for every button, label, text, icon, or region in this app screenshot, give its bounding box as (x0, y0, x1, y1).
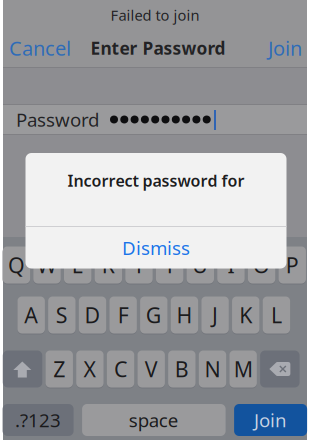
staticText: Q (8, 251, 25, 279)
button[interactable]: G (140, 296, 167, 334)
button[interactable]: K (232, 296, 259, 334)
staticText: H (176, 301, 192, 329)
staticText: L (271, 301, 282, 329)
button[interactable]: W (33, 246, 61, 284)
button[interactable]: .?123 (3, 404, 74, 436)
staticText: G (146, 301, 162, 329)
button[interactable]: Dismiss (25, 227, 286, 268)
staticText: B (175, 355, 189, 383)
staticText: R (102, 251, 115, 279)
button[interactable]: U (187, 246, 214, 284)
button[interactable]: D (79, 296, 106, 334)
staticText: O (253, 251, 270, 279)
staticText: F (118, 301, 129, 329)
button[interactable]: O (248, 246, 275, 284)
button[interactable]: R (95, 246, 122, 284)
button[interactable]: J (201, 296, 229, 334)
staticText: Enter Password (90, 36, 225, 59)
button[interactable]: Q (3, 246, 30, 284)
button[interactable]: P (279, 246, 306, 284)
button[interactable]: H (171, 296, 198, 334)
staticText: T (133, 251, 145, 279)
button[interactable]: Z (45, 350, 73, 388)
button[interactable]: E (64, 246, 91, 284)
button[interactable]: M (229, 350, 257, 388)
button[interactable]: F (109, 296, 137, 334)
staticText: Cancel (9, 35, 71, 61)
button[interactable]: S (48, 296, 75, 334)
staticText: Dismiss (122, 235, 190, 260)
staticText: space (129, 408, 179, 432)
staticText: Join (268, 35, 302, 61)
button[interactable]: X (76, 350, 104, 388)
button[interactable]: Join (234, 31, 309, 65)
button[interactable]: B (168, 350, 196, 388)
staticText: N (204, 355, 220, 383)
button[interactable]: A (17, 296, 45, 334)
staticText: A (24, 301, 38, 329)
staticText: J (212, 301, 218, 329)
button[interactable]: L (263, 296, 290, 334)
staticText: Incorrect password for (67, 170, 244, 191)
button[interactable]: V (137, 350, 165, 388)
staticText: W (37, 251, 57, 279)
staticText: S (56, 301, 68, 329)
staticText: C (114, 355, 127, 383)
staticText: V (145, 355, 158, 383)
button[interactable]: C (107, 350, 134, 388)
staticText: E (72, 251, 84, 279)
button[interactable]: I (217, 246, 245, 284)
button[interactable]: N (199, 350, 226, 388)
staticText: Failed to join (110, 5, 199, 25)
staticText: I (227, 251, 234, 279)
staticText: Z (53, 355, 65, 383)
button[interactable]: space (82, 404, 226, 436)
button[interactable]: T (125, 246, 153, 284)
button[interactable]: Join (234, 404, 307, 436)
staticText: M (234, 355, 253, 383)
button[interactable]: Shift (3, 350, 42, 387)
staticText: P (286, 251, 299, 279)
staticText: K (239, 301, 252, 329)
staticText: X (83, 355, 96, 383)
button[interactable]: Delete (260, 350, 300, 387)
button[interactable]: Y (156, 246, 183, 284)
staticText: Join (254, 408, 287, 432)
button[interactable]: Cancel (3, 31, 87, 65)
staticText: .?123 (15, 408, 61, 432)
staticText: U (192, 251, 208, 279)
staticText: Y (164, 251, 176, 279)
staticText: Password (16, 107, 99, 132)
staticText: D (84, 301, 100, 329)
